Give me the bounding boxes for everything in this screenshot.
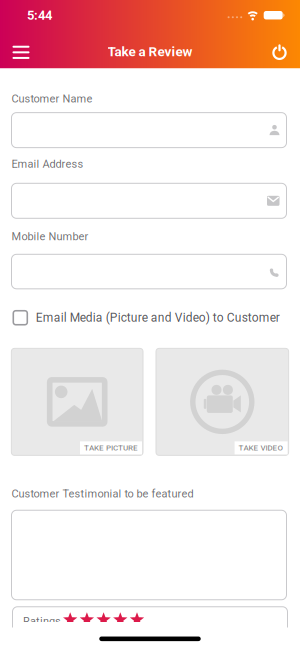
button[interactable]: Customer Name	[12, 113, 287, 148]
staticText: Ratings	[23, 615, 61, 628]
staticText: Customer Name	[11, 92, 92, 105]
staticText: Take a Review	[107, 44, 192, 59]
button[interactable]: Menu	[0, 34, 29, 69]
staticText: TAKE PICTURE	[84, 443, 138, 453]
button[interactable]: TAKE PICTURE	[11, 348, 143, 455]
staticText: Mobile Number	[11, 230, 88, 243]
button[interactable]: Mobile Number	[12, 254, 287, 289]
staticText: Customer Testimonial to be featured	[11, 487, 193, 500]
button[interactable]: Email Media (Picture and Video) to Custo…	[0, 311, 300, 325]
staticText: Email Address	[11, 158, 83, 170]
button[interactable]: TAKE VIDEO	[156, 348, 289, 455]
staticText: Email Media (Picture and Video) to Custo…	[36, 311, 280, 325]
button[interactable]: Rate 3 stars	[96, 612, 111, 627]
button[interactable]: Rate 5 stars	[129, 612, 144, 627]
button[interactable]: Rate 4 stars	[113, 612, 128, 627]
button[interactable]: Rate 1 stars	[63, 612, 78, 627]
staticText: TAKE VIDEO	[239, 443, 284, 453]
button[interactable]: Rate 2 stars	[79, 612, 94, 627]
staticText: 5:44	[27, 8, 52, 23]
button[interactable]: Customer Testimonial	[12, 510, 287, 600]
button[interactable]: Log out	[272, 34, 300, 69]
button[interactable]: Email Address	[12, 183, 287, 218]
